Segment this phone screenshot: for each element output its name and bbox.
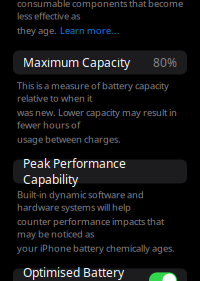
staticText: your iPhone battery chemically ages.: [17, 242, 175, 254]
staticText: Optimised Battery Charging: [23, 264, 124, 281]
staticText: This is a measure of battery capacity re…: [17, 79, 169, 104]
button[interactable]: Learn more...: [60, 24, 120, 36]
staticText: 80%: [153, 54, 177, 70]
staticText: Learn more...: [60, 24, 120, 36]
staticText: usage between charges.: [17, 133, 121, 145]
staticText: counter performance impacts that may be …: [17, 215, 164, 240]
staticText: was new. Lower capacity may result in fe…: [17, 106, 177, 131]
staticText: they age.: [17, 24, 57, 36]
button[interactable]: Peak Performance Capability: [0, 159, 200, 183]
button[interactable]: Optimised Battery Charging: [0, 268, 200, 281]
staticText: Built-in dynamic software and hardware s…: [17, 188, 144, 213]
button[interactable]: Maximum Capacity: [0, 50, 200, 74]
staticText: consumable components that become less e…: [17, 0, 183, 22]
staticText: Peak Performance Capability: [23, 155, 126, 187]
staticText: Maximum Capacity: [23, 54, 130, 70]
